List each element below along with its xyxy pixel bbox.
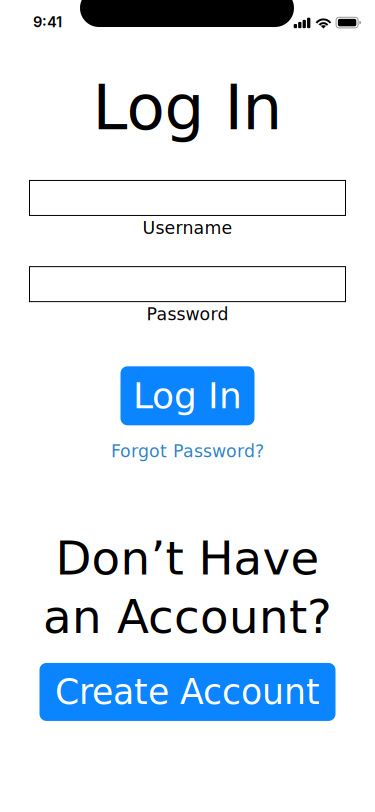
staticText: 9:41: [33, 13, 62, 31]
staticText: an Account?: [43, 590, 332, 644]
staticText: Log In: [133, 375, 242, 417]
staticText: Create Account: [55, 672, 320, 712]
staticText: Password: [146, 304, 228, 324]
button[interactable]: Log In: [120, 366, 254, 425]
button[interactable]: Forgot Password?: [111, 425, 264, 466]
staticText: Forgot Password?: [111, 441, 264, 461]
button[interactable]: Create Account: [39, 663, 335, 721]
staticText: Don’t Have: [55, 531, 319, 586]
staticText: Username: [142, 218, 232, 238]
staticText: Log In: [92, 71, 282, 144]
